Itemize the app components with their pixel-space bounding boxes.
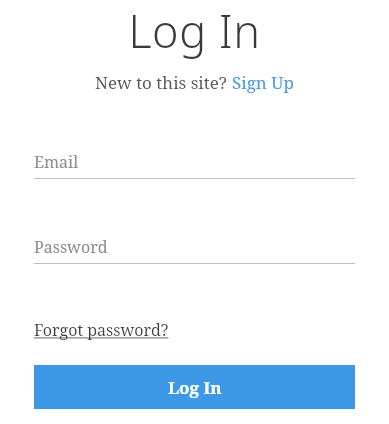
staticText: Password	[34, 236, 108, 258]
button[interactable]: Email	[34, 151, 355, 179]
staticText: Log In	[128, 0, 261, 61]
staticText: Sign Up	[232, 71, 294, 94]
button[interactable]: Forgot password?	[34, 319, 169, 341]
button[interactable]: Log In	[34, 365, 355, 409]
staticText: Forgot password?	[34, 319, 169, 341]
staticText: New to this site?	[95, 71, 232, 94]
staticText: Email	[34, 151, 79, 173]
button[interactable]: Sign Up	[232, 71, 294, 94]
staticText: Log In	[168, 376, 222, 399]
button[interactable]: Password	[34, 236, 355, 264]
